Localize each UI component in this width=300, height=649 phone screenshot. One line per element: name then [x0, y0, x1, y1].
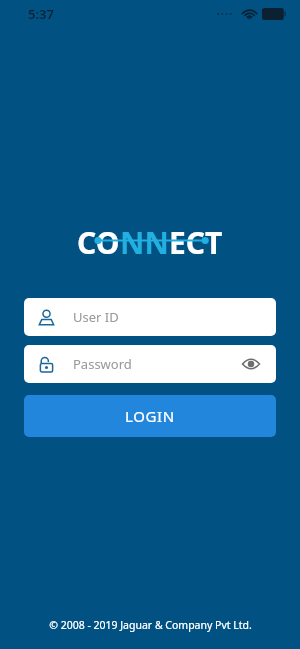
button[interactable]: User ID: [24, 298, 276, 336]
button[interactable]: Show password: [238, 351, 264, 377]
button[interactable]: LOGIN: [24, 395, 276, 437]
staticText: 5:37: [28, 5, 54, 23]
staticText: ECT: [169, 222, 223, 256]
button[interactable]: Password: [24, 345, 276, 383]
staticText: LOGIN: [125, 406, 175, 426]
staticText: Password: [73, 355, 132, 373]
staticText: NN: [120, 222, 169, 256]
staticText: User ID: [73, 308, 119, 326]
staticText: © 2008 - 2019 Jaguar & Company Pvt Ltd.: [49, 618, 252, 632]
staticText: CO: [77, 222, 120, 256]
